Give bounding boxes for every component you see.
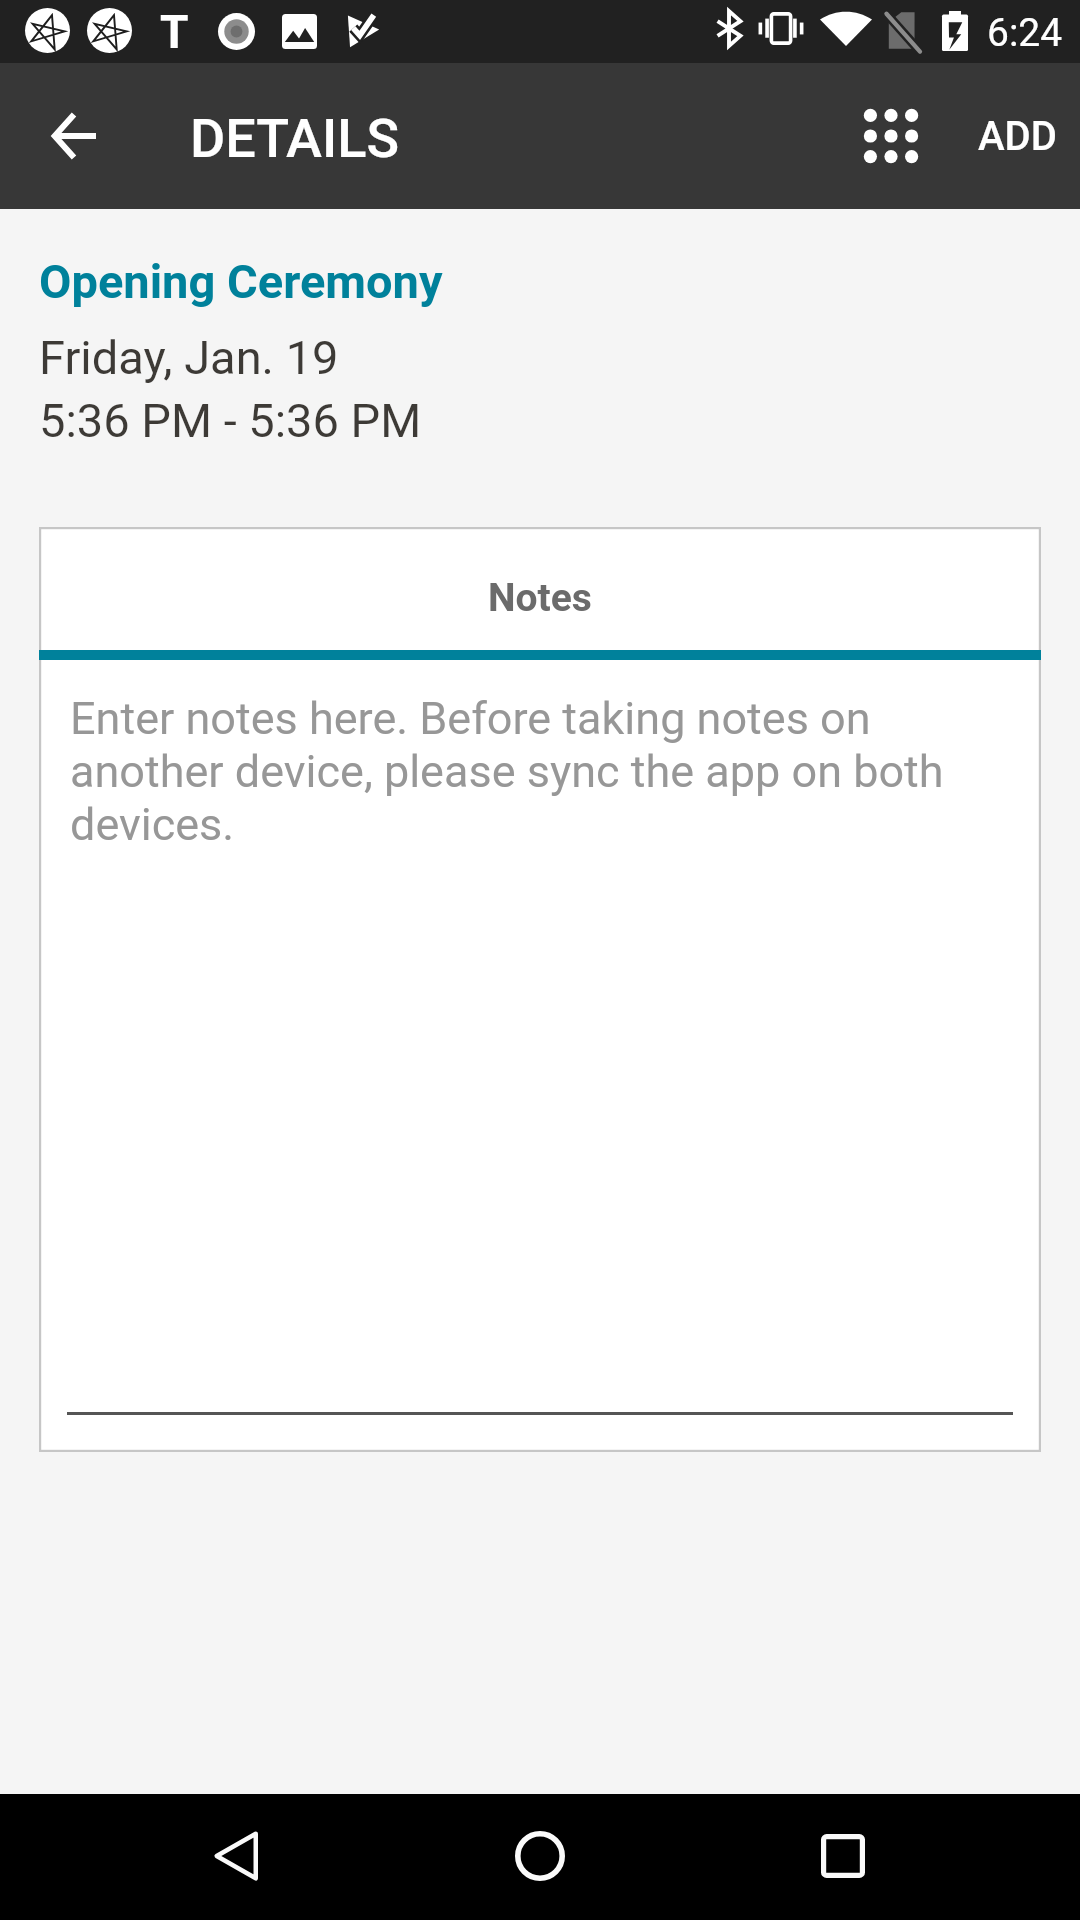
staticText: T: [160, 5, 189, 59]
staticText: Enter notes here. Before taking notes on…: [70, 692, 985, 851]
staticText: Friday, Jan. 19 5:36 PM - 5:36 PM: [39, 330, 422, 448]
button[interactable]: ADD: [955, 88, 1080, 184]
button[interactable]: Recent apps: [785, 1798, 901, 1914]
staticText: Notes: [488, 575, 592, 621]
button[interactable]: Enter notes here: [39, 660, 1041, 1452]
button[interactable]: Navigate up: [26, 88, 122, 184]
staticText: 6:24: [987, 10, 1063, 56]
button[interactable]: Back: [178, 1798, 294, 1914]
button[interactable]: Home: [482, 1798, 598, 1914]
staticText: DETAILS: [190, 107, 400, 170]
button[interactable]: Apps: [843, 88, 939, 184]
staticText: ADD: [978, 113, 1057, 160]
staticText: Opening Ceremony: [39, 254, 443, 309]
